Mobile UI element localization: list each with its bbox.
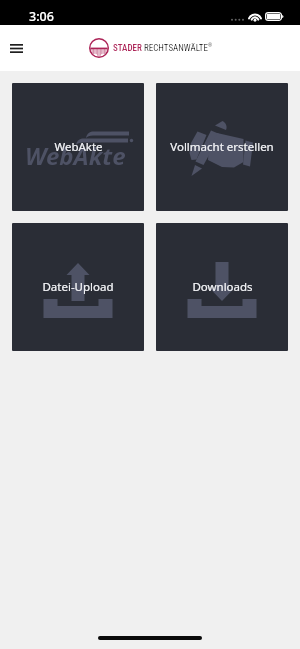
staticText: Vollmacht erstellen	[170, 139, 274, 155]
button[interactable]: Downloads	[156, 223, 288, 351]
button[interactable]: Datei-Upload	[12, 223, 144, 351]
staticText: STADER	[113, 43, 144, 54]
staticText: 3:06	[29, 8, 54, 25]
staticText: WebAkte	[25, 139, 126, 172]
button[interactable]: Vollmacht erstellen	[156, 83, 288, 211]
button[interactable]: Open navigation menu	[1, 33, 31, 63]
staticText: WebAkte	[54, 139, 103, 155]
staticText: Datei-Upload	[42, 279, 114, 295]
staticText: RECHTSANWÄLTE	[144, 43, 208, 54]
staticText: Downloads	[192, 279, 253, 295]
staticText: ®	[208, 42, 213, 49]
button[interactable]: WebAkte	[12, 83, 144, 211]
